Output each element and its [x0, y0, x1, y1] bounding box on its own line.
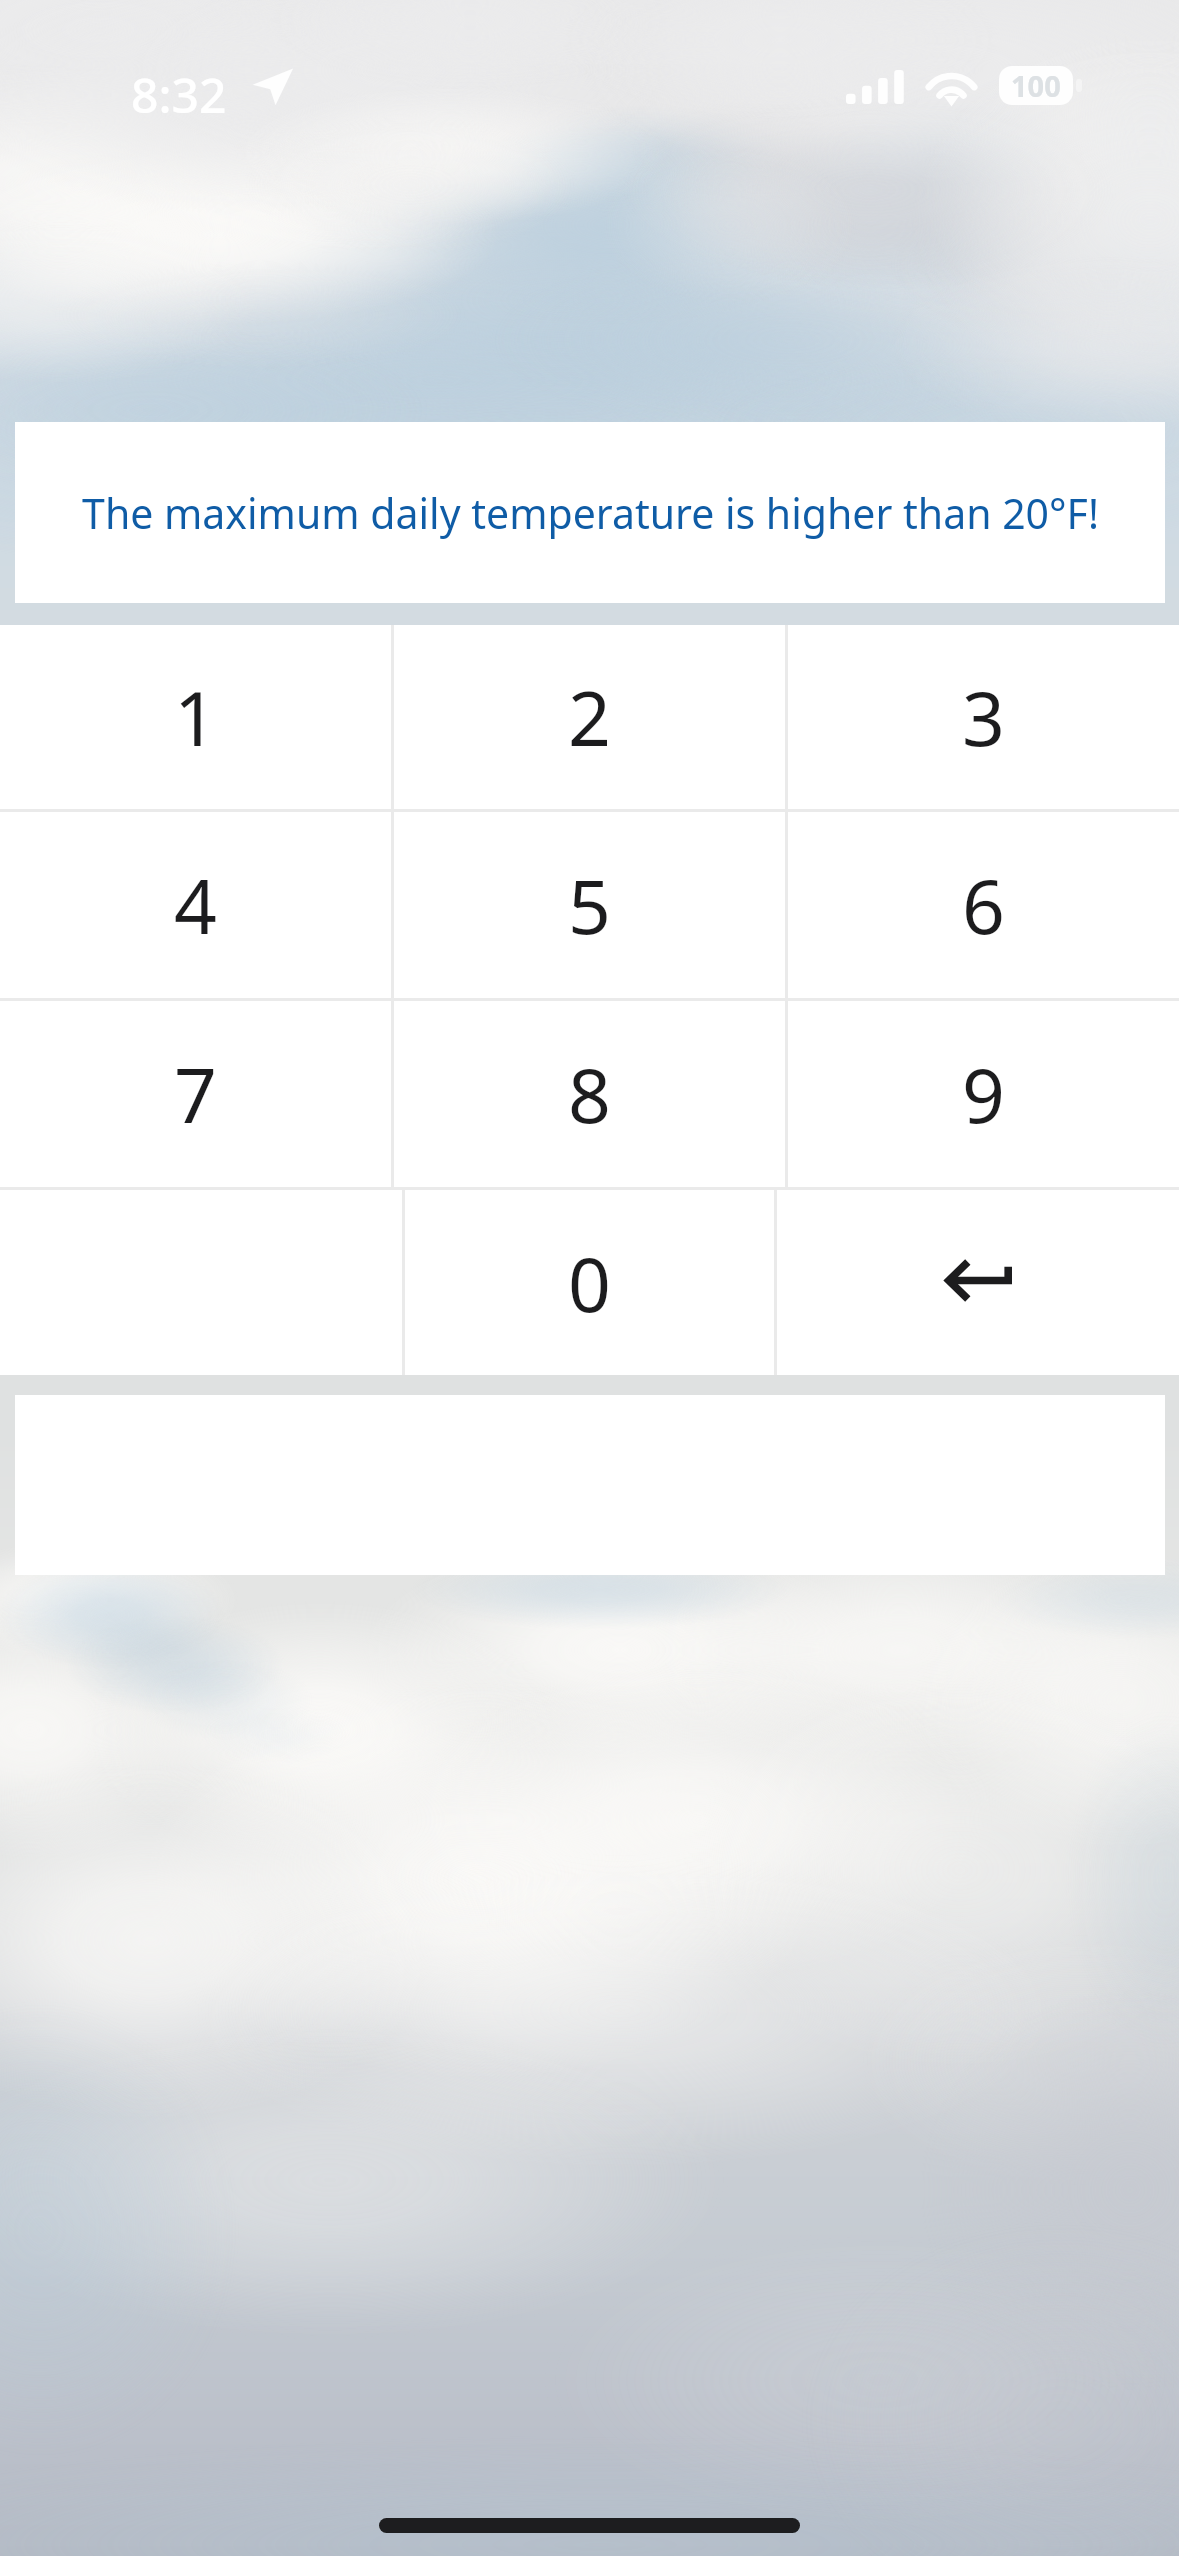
- button[interactable]: 2: [394, 625, 785, 809]
- button[interactable]: 9: [788, 1001, 1179, 1187]
- button[interactable]: 1: [0, 625, 391, 809]
- button[interactable]: 5: [394, 812, 785, 998]
- staticText: 0: [568, 1232, 611, 1334]
- button[interactable]: Enter: [777, 1190, 1179, 1375]
- button[interactable]: 4: [0, 812, 391, 998]
- button[interactable]: 8: [394, 1001, 785, 1187]
- staticText: 3: [962, 666, 1005, 768]
- staticText: 5: [568, 854, 611, 956]
- button[interactable]: The maximum daily temperature is higher …: [15, 422, 1165, 603]
- staticText: 6: [962, 854, 1005, 956]
- staticText: 8:32: [131, 62, 227, 127]
- staticText: 4: [174, 854, 217, 956]
- button[interactable]: 7: [0, 1001, 391, 1187]
- button[interactable]: 6: [788, 812, 1179, 998]
- staticText: 2: [568, 666, 611, 768]
- staticText: 7: [174, 1043, 217, 1145]
- button[interactable]: 3: [788, 625, 1179, 809]
- staticText: 9: [962, 1043, 1005, 1145]
- staticText: The maximum daily temperature is higher …: [82, 485, 1099, 541]
- staticText: 1: [174, 666, 217, 768]
- staticText: 8: [568, 1043, 611, 1145]
- button[interactable]: 0: [405, 1190, 774, 1375]
- staticText: 100: [1011, 66, 1061, 105]
